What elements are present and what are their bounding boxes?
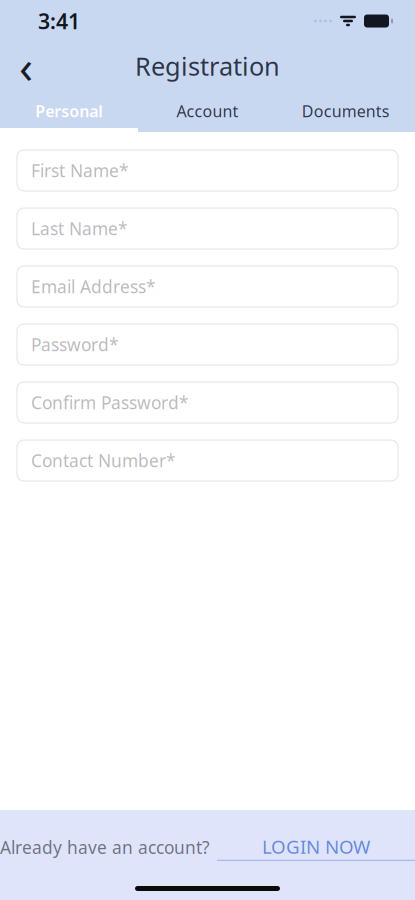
button[interactable]: Confirm Password* [17, 382, 398, 423]
button[interactable]: Personal [0, 94, 138, 128]
staticText: 3:41 [38, 7, 80, 35]
staticText: Documents [302, 100, 390, 122]
button[interactable]: Account [138, 94, 277, 128]
staticText: Registration [135, 49, 280, 83]
staticText: Already have an account? [0, 836, 210, 859]
staticText: ‹ [19, 36, 33, 96]
staticText: Password* [31, 333, 119, 356]
staticText: LOGIN NOW [262, 834, 370, 859]
staticText: Contact Number* [31, 449, 176, 472]
staticText: Account [176, 100, 238, 122]
button[interactable]: Contact Number* [17, 440, 398, 481]
button[interactable]: Last Name* [17, 208, 398, 249]
button[interactable]: Back [4, 44, 48, 88]
button[interactable]: LOGIN NOW [217, 834, 415, 861]
staticText: Personal [35, 100, 103, 122]
staticText: First Name* [31, 159, 129, 182]
staticText: Confirm Password* [31, 391, 189, 414]
button[interactable]: Email Address* [17, 266, 398, 307]
button[interactable]: Password* [17, 324, 398, 365]
staticText: Email Address* [31, 275, 156, 298]
button[interactable]: Documents [277, 94, 415, 128]
button[interactable]: First Name* [17, 150, 398, 191]
staticText: Last Name* [31, 217, 128, 240]
